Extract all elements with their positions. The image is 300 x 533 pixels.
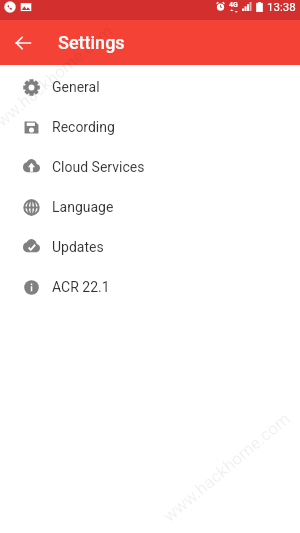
staticText: www.hackhome.com — [0, 21, 117, 139]
staticText: ACR 22.1 — [52, 279, 110, 295]
staticText: 13:38 — [267, 0, 296, 13]
staticText: Updates — [52, 239, 104, 255]
button[interactable]: Recording — [0, 107, 300, 147]
staticText: General — [52, 79, 100, 95]
staticText: Settings — [58, 32, 125, 53]
staticText: 4G — [229, 1, 238, 9]
button[interactable]: Language — [0, 187, 300, 227]
staticText: Cloud Services — [52, 159, 145, 175]
button[interactable]: Back — [0, 20, 45, 65]
staticText: Language — [52, 199, 114, 215]
button[interactable]: Updates — [0, 227, 300, 267]
staticText: Recording — [52, 119, 115, 135]
button[interactable]: General — [0, 67, 300, 107]
button[interactable]: Cloud Services — [0, 147, 300, 187]
button[interactable]: ACR 22.1 — [0, 267, 300, 307]
